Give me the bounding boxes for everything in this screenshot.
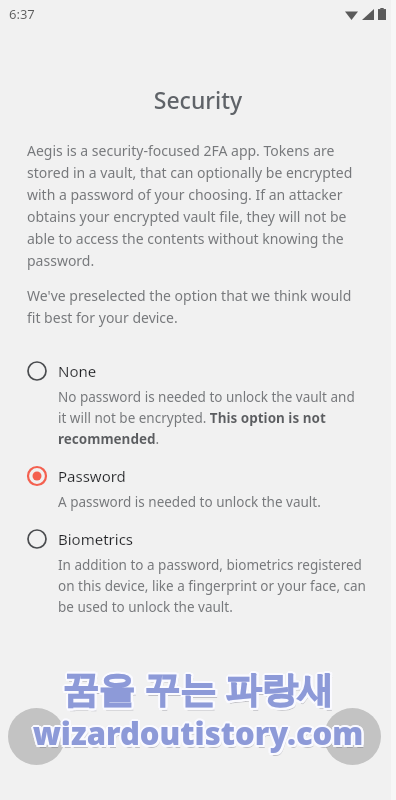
staticText: 꿈을 꾸는 파랑새 [0,664,396,713]
staticText: wizardoutistory.com [2,715,396,757]
staticText: In addition to a password, biometrics re… [58,556,366,616]
button[interactable]: Password [0,466,396,511]
staticText: 꿈을 꾸는 파랑새 [2,663,396,712]
staticText: wizardoutistory.com [2,714,396,756]
staticText: No password is needed to unlock the vaul… [58,388,366,448]
staticText: 꿈을 꾸는 파랑새 [0,664,394,713]
staticText: None [58,361,97,381]
staticText: Aegis is a security-focused 2FA app. Tok… [27,141,366,270]
staticText: wizardoutistory.com [0,710,396,752]
staticText: 꿈을 꾸는 파랑새 [2,667,396,716]
button[interactable]: Biometrics [0,529,396,616]
staticText: wizardoutistory.com [0,714,396,756]
staticText: wizardoutistory.com [0,712,394,754]
staticText: Security [0,84,396,115]
staticText: Biometrics [58,529,134,549]
staticText: wizardoutistory.com [2,711,396,753]
staticText: 꿈을 꾸는 파랑새 [0,666,396,715]
staticText: 꿈을 꾸는 파랑새 [0,663,395,712]
staticText: 6:37 [9,5,35,23]
staticText: Password [58,466,126,486]
staticText: wizardoutistory.com [2,712,396,754]
staticText: wizardoutistory.com [0,712,396,754]
staticText: wizardoutistory.com [0,714,395,756]
staticText: wizardoutistory.com [0,711,395,753]
staticText: 꿈을 꾸는 파랑새 [0,666,395,715]
staticText: We've preselected the option that we thi… [27,286,366,327]
staticText: 꿈을 꾸는 파랑새 [2,664,396,713]
staticText: 꿈을 꾸는 파랑새 [2,666,396,715]
staticText: 꿈을 꾸는 파랑새 [0,662,396,711]
button[interactable]: None [0,361,396,448]
staticText: A password is needed to unlock the vault… [58,493,321,511]
